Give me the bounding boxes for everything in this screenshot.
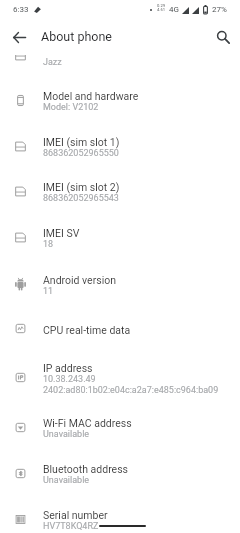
staticText: IMEI (sim slot 1): [43, 136, 120, 148]
staticText: Android version: [43, 274, 116, 286]
button[interactable]: Serial number: [0, 498, 240, 533]
button[interactable]: Search: [210, 24, 236, 50]
staticText: Unavailable: [43, 475, 90, 486]
button[interactable]: SIM status: [0, 34, 240, 79]
staticText: Unavailable: [43, 429, 90, 440]
staticText: 11: [43, 286, 54, 297]
button[interactable]: IP address: [0, 351, 240, 406]
staticText: 868362052965543: [43, 193, 119, 204]
staticText: Wi-Fi MAC address: [43, 417, 132, 429]
staticText: IMEI (sim slot 2): [43, 181, 120, 193]
staticText: Model and hardware: [43, 90, 139, 102]
button[interactable]: IMEI SV: [0, 216, 240, 263]
staticText: 6:33: [13, 5, 29, 14]
staticText: IMEI SV: [43, 227, 80, 239]
staticText: 18: [43, 239, 54, 250]
staticText: IP address: [43, 362, 93, 374]
button[interactable]: Back: [6, 24, 32, 50]
staticText: Serial number: [43, 509, 108, 521]
staticText: 27%: [212, 5, 227, 14]
staticText: 4G: [169, 5, 179, 14]
button[interactable]: Model and hardware: [0, 79, 240, 125]
staticText: 2402:ad80:1b02:e04c:a2a7:e485:c964:ba09: [43, 385, 219, 396]
staticText: About phone: [41, 29, 112, 44]
staticText: 10.38.243.49: [43, 374, 96, 385]
button[interactable]: Android version: [0, 263, 240, 313]
staticText: CPU real-time data: [43, 324, 131, 336]
button[interactable]: Bluetooth address: [0, 452, 240, 498]
button[interactable]: IMEI (sim slot 2): [0, 170, 240, 216]
staticText: Model: V2102: [43, 102, 99, 113]
staticText: Bluetooth address: [43, 463, 129, 475]
button[interactable]: Wi-Fi MAC address: [0, 406, 240, 452]
staticText: 868362052965550: [43, 148, 119, 159]
button[interactable]: IMEI (sim slot 1): [0, 125, 240, 170]
staticText: HV7T8KQ4RZ: [43, 521, 99, 532]
staticText: Jazz: [43, 57, 62, 68]
button[interactable]: CPU real-time data: [0, 313, 240, 351]
staticText: 0.29 4.61: [157, 3, 166, 13]
